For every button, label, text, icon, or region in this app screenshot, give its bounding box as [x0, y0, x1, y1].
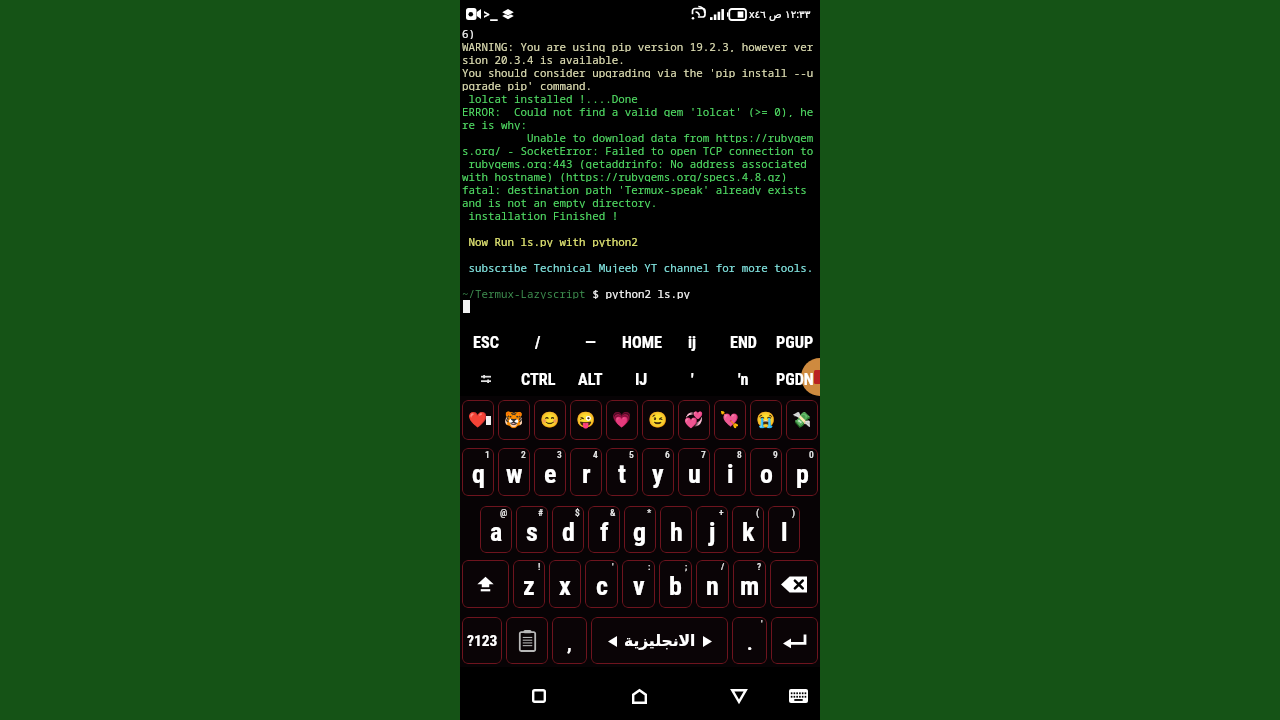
button[interactable]: CTRL [512, 361, 564, 397]
staticText: f [600, 517, 609, 547]
button[interactable]: 😉 [642, 400, 674, 440]
button[interactable]: c [585, 560, 618, 608]
button[interactable]: u [678, 448, 710, 496]
button[interactable]: 😭 [750, 400, 782, 440]
button[interactable]: 😜 [570, 400, 602, 440]
button[interactable]: x [549, 560, 581, 608]
staticText: ) [792, 507, 796, 518]
staticText: 8 [737, 449, 742, 460]
button[interactable]: Backspace [770, 560, 818, 608]
staticText: t [618, 459, 626, 489]
button[interactable]: l [768, 506, 800, 553]
staticText: p [796, 459, 809, 489]
staticText: الانجليزية [624, 632, 696, 650]
button[interactable]: — [564, 324, 616, 361]
button[interactable]: الانجليزية [591, 617, 728, 664]
button[interactable]: 'n [718, 361, 769, 397]
staticText: Now Run ls.py with python2 [462, 234, 638, 247]
button[interactable]: f [588, 506, 620, 553]
staticText: re is why: [462, 117, 528, 130]
button[interactable]: m [733, 560, 766, 608]
staticText: 3 [557, 449, 562, 460]
button[interactable]: z [513, 560, 545, 608]
staticText: sion 20.3.4 is available. [462, 52, 625, 65]
button[interactable]: IJ [616, 361, 667, 397]
button[interactable]: b [659, 560, 692, 608]
button[interactable]: Switch keyboard [774, 672, 820, 720]
staticText: w [506, 459, 523, 489]
other: Backspace [781, 576, 808, 593]
staticText: v [633, 571, 645, 601]
button[interactable]: 💞 [678, 400, 710, 440]
staticText: b [669, 571, 682, 601]
button[interactable]: w [498, 448, 530, 496]
button[interactable]: Floating recorder bubble [801, 358, 820, 396]
button[interactable]: HOME [616, 324, 667, 361]
button[interactable]: j [696, 506, 728, 553]
button[interactable]: Enter [771, 617, 818, 664]
button[interactable]: q [462, 448, 494, 496]
button[interactable]: / [512, 324, 564, 361]
button[interactable]: y [642, 448, 674, 496]
staticText: i [727, 459, 734, 489]
button[interactable]: 💗 [606, 400, 638, 440]
button[interactable]: PGUP [769, 324, 820, 361]
button[interactable]: , [552, 617, 587, 664]
staticText: / [535, 333, 541, 352]
button[interactable]: 💸 [786, 400, 818, 440]
button[interactable]: ' [667, 361, 718, 397]
staticText: . [747, 632, 753, 654]
button[interactable]: Home [615, 672, 663, 720]
button[interactable]: ALT [564, 361, 616, 397]
staticText: 'n [738, 370, 749, 389]
staticText: $ [575, 507, 580, 518]
staticText: subscribe Technical Mujeeb YT channel fo… [462, 260, 814, 273]
staticText: 😜 [576, 411, 596, 429]
staticText: s [526, 517, 538, 547]
button[interactable]: ESC [460, 324, 512, 361]
button[interactable]: d [552, 506, 584, 553]
button[interactable]: Keyboard toggle [460, 361, 512, 397]
button[interactable]: 😊 [534, 400, 566, 440]
staticText: x [559, 571, 571, 601]
staticText: ALT [578, 370, 603, 389]
button[interactable]: i [714, 448, 746, 496]
staticText: rubygems.org:443 (getaddrinfo: No addres… [462, 156, 807, 169]
button[interactable]: h [660, 506, 692, 553]
button[interactable]: ij [667, 324, 718, 361]
button[interactable]: Clipboard [506, 617, 548, 664]
button[interactable]: ?123 [462, 617, 502, 664]
button[interactable]: r [570, 448, 602, 496]
button[interactable]: a [480, 506, 512, 553]
button[interactable]: Back [715, 672, 763, 720]
button[interactable]: PGDN [769, 361, 820, 397]
button[interactable]: n [696, 560, 729, 608]
button[interactable]: g [624, 506, 656, 553]
staticText: @ [500, 507, 508, 518]
button[interactable]: ❤ [462, 400, 494, 440]
button[interactable]: Shift [462, 560, 509, 608]
staticText: HOME [622, 333, 662, 352]
staticText: r [582, 459, 591, 489]
button[interactable]: 🐯 [498, 400, 530, 440]
staticText: q [472, 459, 485, 489]
staticText: — [585, 333, 596, 352]
staticText: ~/Termux-Lazyscript [462, 286, 586, 299]
button[interactable]: k [732, 506, 764, 553]
button[interactable]: e [534, 448, 566, 496]
button[interactable]: v [622, 560, 655, 608]
staticText: WARNING: You are using pip version 19.2.… [462, 39, 814, 52]
button[interactable]: p [786, 448, 818, 496]
staticText: 😊 [540, 411, 560, 429]
button[interactable]: s [516, 506, 548, 553]
button[interactable]: t [606, 448, 638, 496]
staticText: ص [769, 8, 782, 20]
staticText: 😉 [648, 411, 668, 429]
staticText: s.org/ - SocketError: Failed to open TCP… [462, 143, 814, 156]
button[interactable]: 💘 [714, 400, 746, 440]
staticText: , [567, 632, 572, 654]
button[interactable]: Recents [515, 672, 563, 720]
button[interactable]: o [750, 448, 782, 496]
button[interactable]: . [732, 617, 767, 664]
button[interactable]: END [718, 324, 769, 361]
